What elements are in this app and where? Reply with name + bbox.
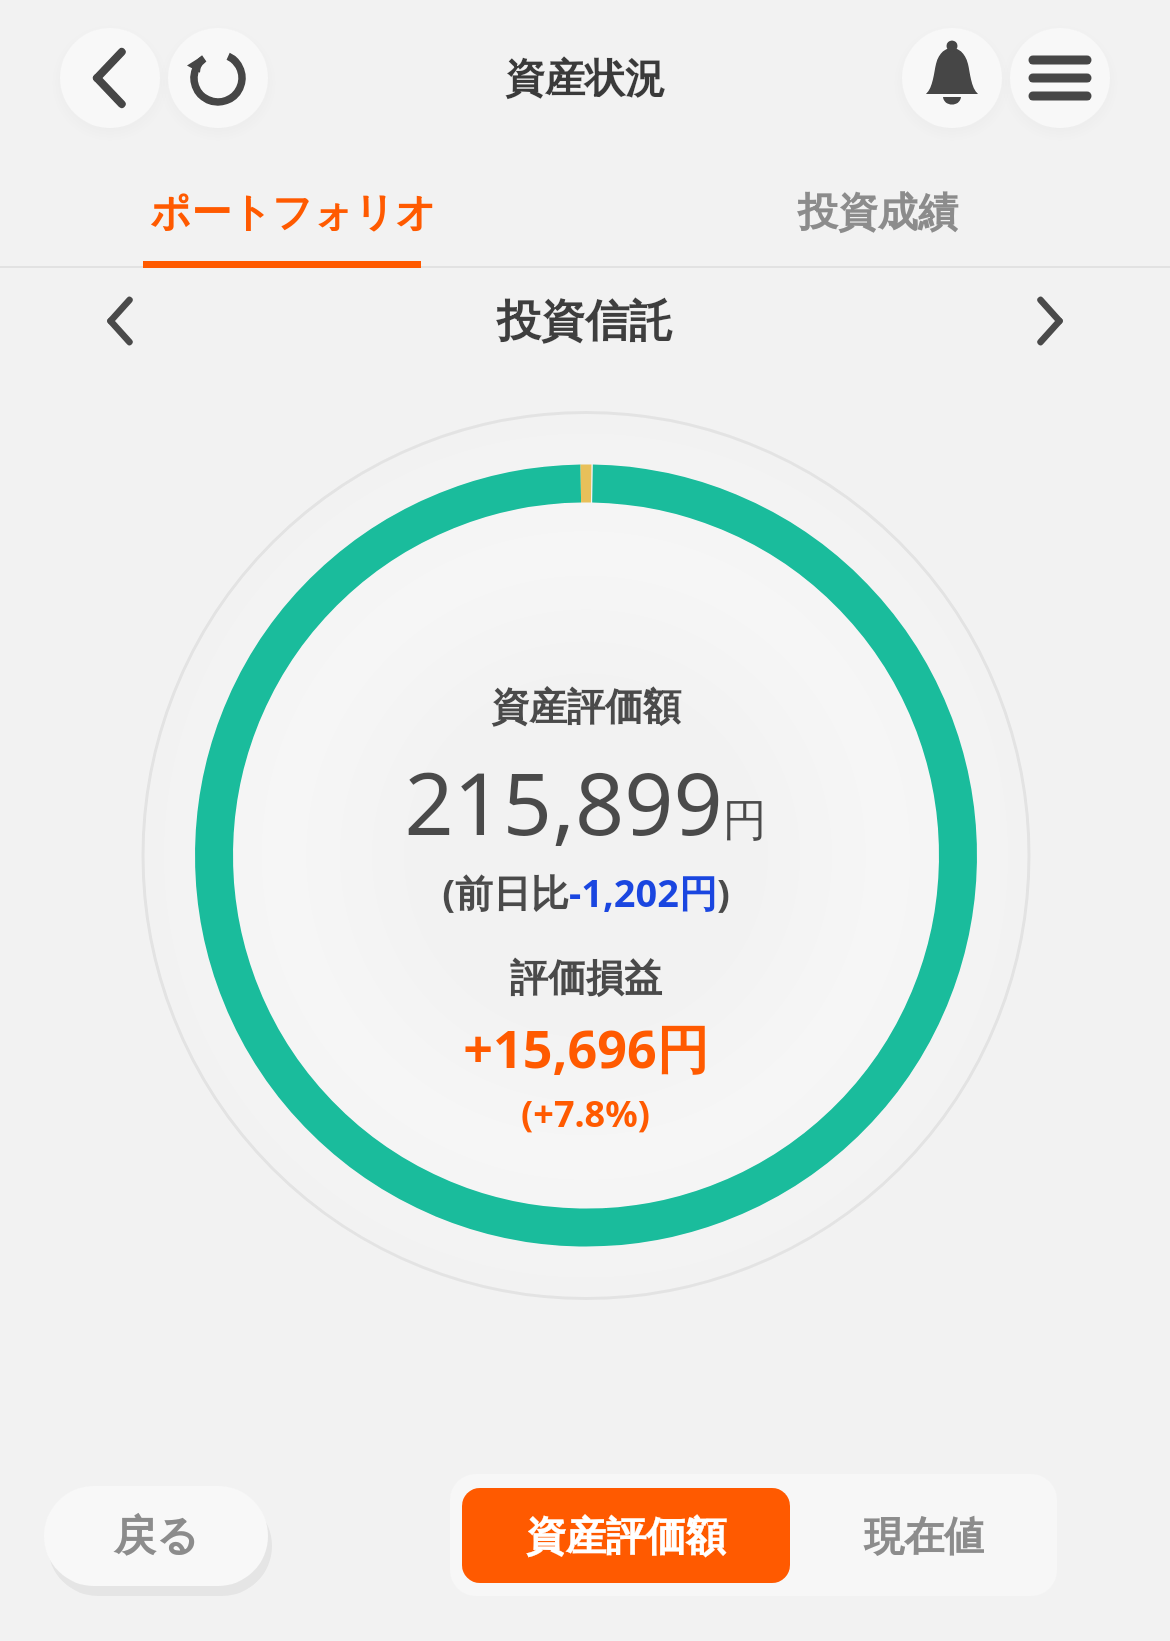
button[interactable]: Refresh [168,28,268,128]
button[interactable]: Next [1008,279,1092,363]
staticText: 評価損益 [510,954,662,1002]
staticText: ポートフォリオ [150,187,436,237]
staticText: 投資信託 [497,294,673,349]
button[interactable]: Previous [78,279,162,363]
staticText: 現在値 [864,1511,984,1561]
button[interactable]: Menu [1010,28,1110,128]
staticText: +15,696円 [463,1012,709,1083]
staticText: 資産評価額 [526,1511,726,1561]
button[interactable]: ポートフォリオ [0,156,585,268]
button[interactable]: Back [60,28,160,128]
button[interactable]: 投資成績 [585,156,1170,268]
staticText: 資産状況 [505,53,665,103]
staticText: (+7.8%) [521,1089,650,1138]
staticText: 215,899円 [404,743,767,860]
staticText: 投資成績 [798,187,958,237]
button[interactable]: 資産評価額 [462,1488,790,1583]
staticText: (前日比-1,202円) [442,866,730,918]
button[interactable]: 戻る [44,1486,268,1586]
staticText: 戻る [114,1510,199,1563]
button[interactable]: Notifications [902,28,1002,128]
staticText: 資産評価額 [491,683,681,731]
button[interactable]: 現在値 [790,1488,1057,1583]
